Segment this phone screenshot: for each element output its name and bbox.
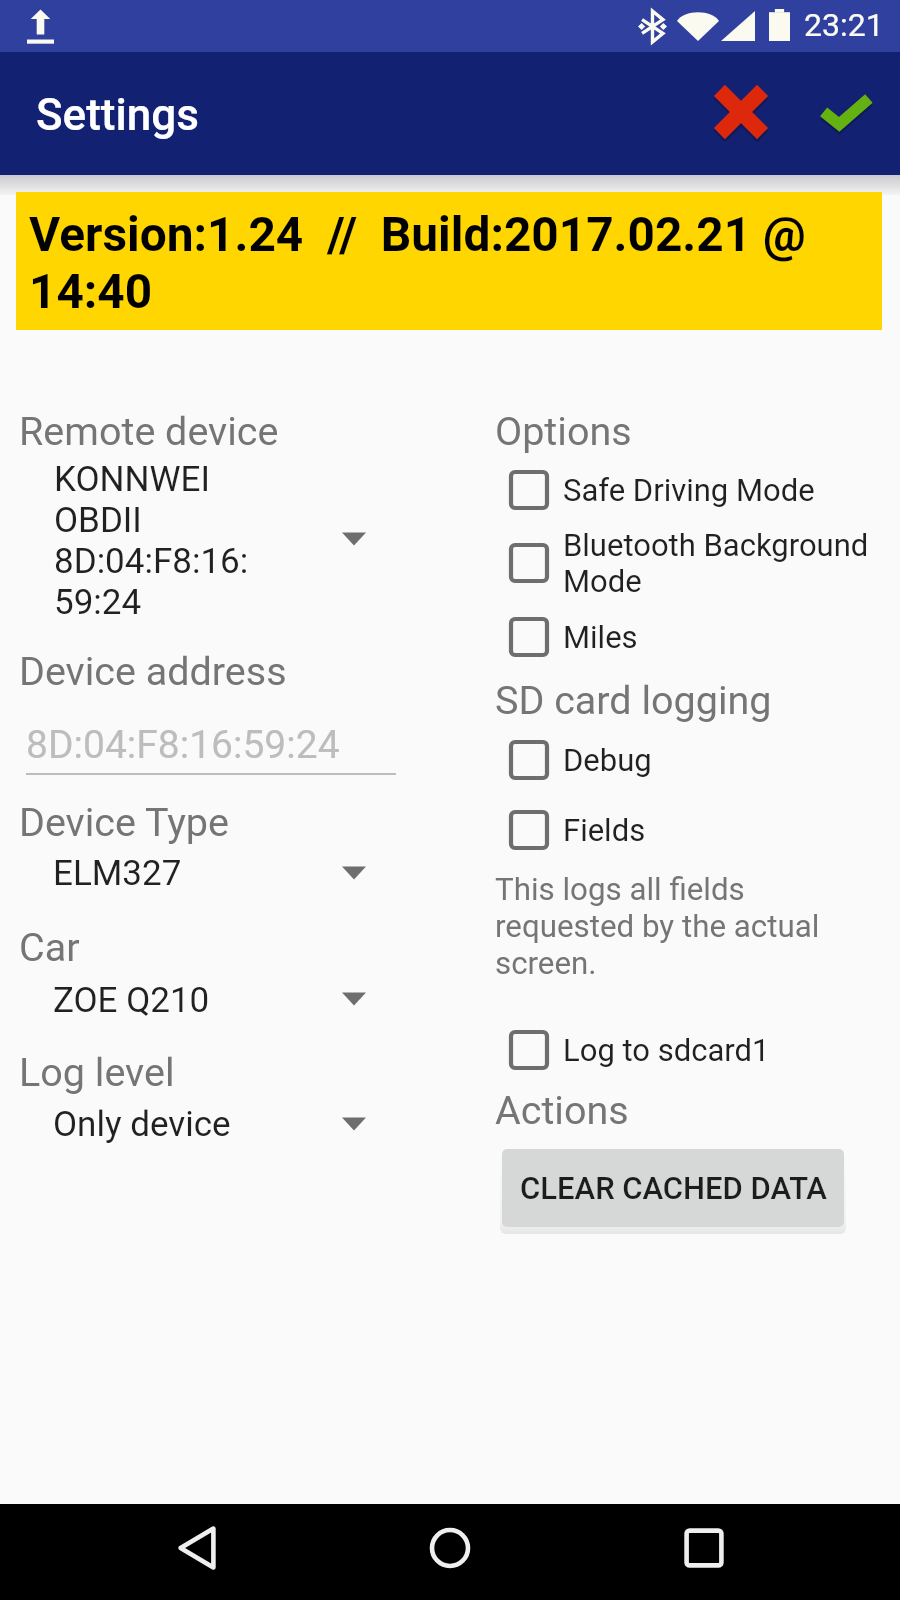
staticText: Settings xyxy=(36,89,199,141)
staticText: Only device xyxy=(53,1104,231,1145)
staticText: ELM327 xyxy=(53,853,182,894)
staticText: Safe Driving Mode xyxy=(563,472,815,508)
staticText: Log level xyxy=(19,1049,175,1095)
staticText: Version:1.24 // Build:2017.02.21 @ 14:40 xyxy=(29,207,859,320)
staticText: 8D:04:F8:16:59:24 xyxy=(26,722,340,768)
staticText: Fields xyxy=(563,812,646,848)
staticText: Car xyxy=(19,924,80,970)
button[interactable]: Fields xyxy=(509,810,646,850)
staticText: This logs all fields requested by the ac… xyxy=(495,871,820,982)
button[interactable]: Back xyxy=(152,1503,242,1593)
staticText: Bluetooth Background Mode xyxy=(563,527,869,600)
staticText: ZOE Q210 xyxy=(53,980,210,1021)
staticText: Device address xyxy=(19,648,287,694)
button[interactable]: Debug xyxy=(509,740,652,780)
button[interactable]: Log to sdcard1 xyxy=(509,1030,770,1070)
button[interactable]: CLEAR CACHED DATA xyxy=(502,1149,844,1227)
staticText: KONNWEI OBDII 8D:04:F8:16: 59:24 xyxy=(54,459,249,623)
staticText: Device Type xyxy=(19,799,229,845)
button[interactable]: Home xyxy=(405,1503,495,1593)
staticText: Debug xyxy=(563,742,652,778)
staticText: Options xyxy=(495,408,632,454)
button[interactable]: Safe Driving Mode xyxy=(509,470,815,510)
staticText: SD card logging xyxy=(495,677,772,723)
staticText: 23:21 xyxy=(804,6,884,44)
staticText: Miles xyxy=(563,619,638,655)
staticText: CLEAR CACHED DATA xyxy=(520,1170,827,1206)
staticText: Log to sdcard1 xyxy=(563,1032,770,1068)
button[interactable]: Recents xyxy=(659,1503,749,1593)
button[interactable]: Bluetooth Background Mode xyxy=(509,525,869,601)
staticText: Remote device xyxy=(19,408,279,454)
staticText: Actions xyxy=(495,1087,629,1133)
button[interactable]: Miles xyxy=(509,617,638,657)
button[interactable]: Confirm xyxy=(803,70,889,156)
button[interactable]: Cancel xyxy=(698,69,784,155)
